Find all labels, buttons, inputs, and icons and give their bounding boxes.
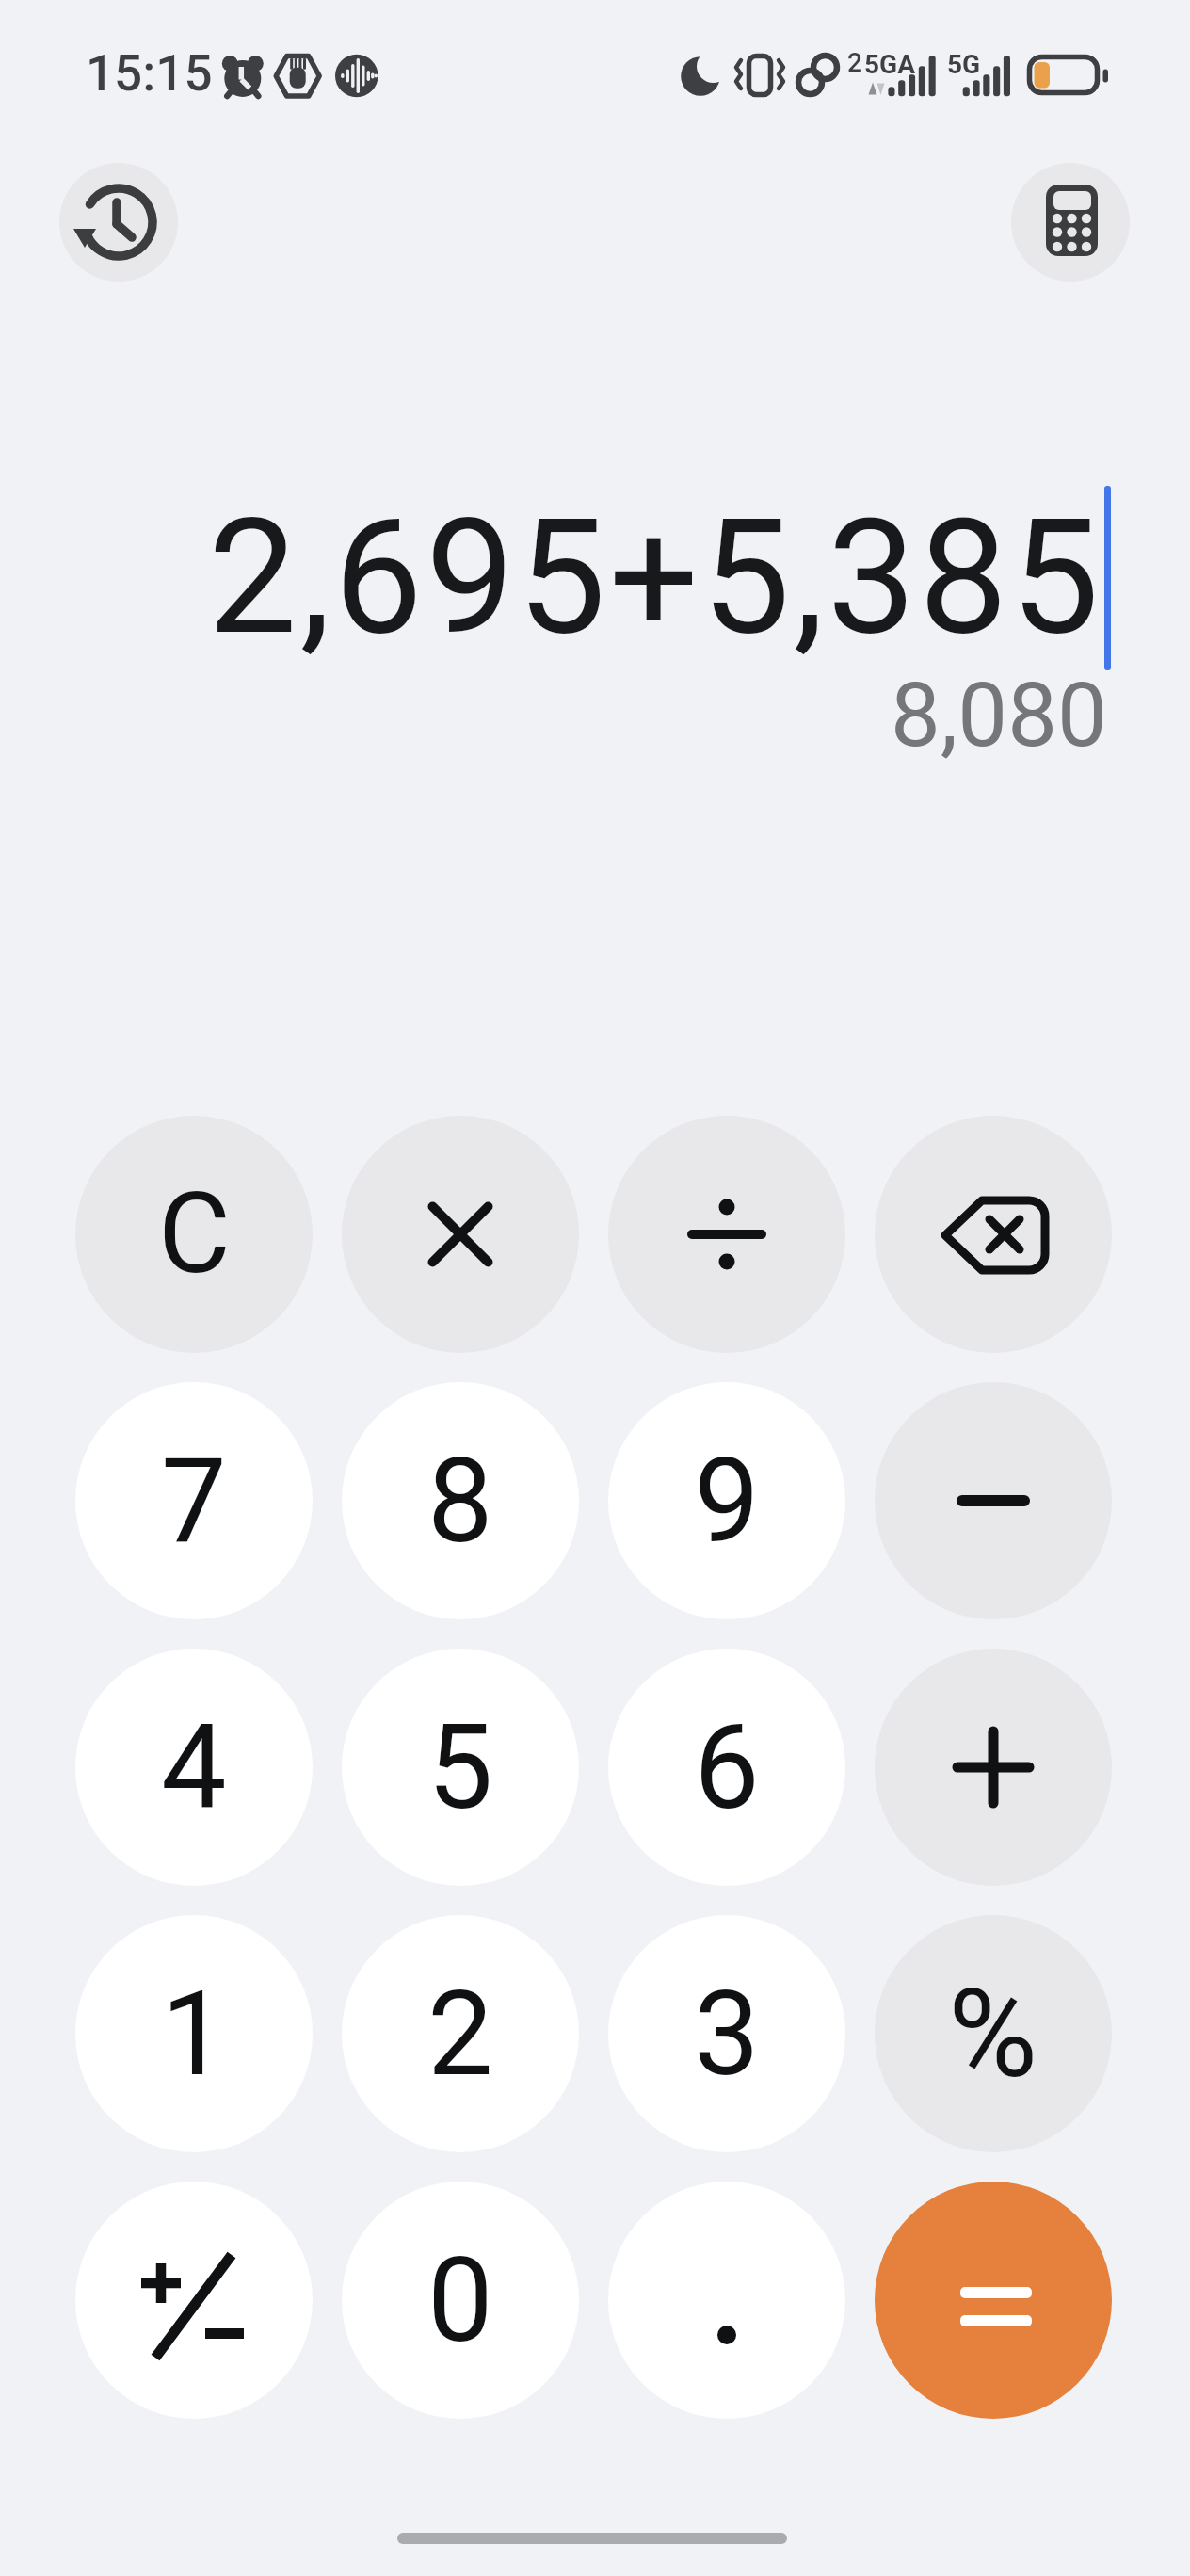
button[interactable]: % bbox=[875, 1915, 1112, 2152]
button[interactable] bbox=[608, 1116, 845, 1353]
staticText: 2 bbox=[427, 1966, 493, 2102]
staticText: 0 bbox=[427, 2232, 493, 2369]
button[interactable]: 8 bbox=[342, 1382, 579, 1619]
button[interactable]: 4 bbox=[75, 1649, 313, 1886]
staticText: 1 bbox=[161, 1966, 227, 2102]
staticText: 7 bbox=[161, 1433, 227, 1570]
button[interactable]: 9 bbox=[608, 1382, 845, 1619]
button[interactable]: C bbox=[75, 1116, 313, 1353]
staticText: 2 bbox=[847, 47, 862, 78]
staticText: 9 bbox=[694, 1433, 760, 1570]
button[interactable] bbox=[875, 2182, 1112, 2419]
button[interactable]: 7 bbox=[75, 1382, 313, 1619]
staticText: 6 bbox=[694, 1699, 760, 1836]
staticText: 5GA bbox=[864, 49, 915, 80]
staticText: 4 bbox=[161, 1699, 227, 1836]
staticText: 5 bbox=[427, 1699, 493, 1836]
staticText: 5G bbox=[947, 49, 981, 80]
button[interactable] bbox=[342, 1116, 579, 1353]
staticText: 3 bbox=[694, 1966, 760, 2102]
button[interactable]: 5 bbox=[342, 1649, 579, 1886]
button[interactable] bbox=[75, 2182, 313, 2419]
button[interactable] bbox=[875, 1649, 1112, 1886]
button[interactable] bbox=[875, 1116, 1112, 1353]
staticText: 8,080 bbox=[891, 664, 1107, 767]
button[interactable] bbox=[608, 2182, 845, 2419]
button[interactable]: 2 bbox=[342, 1915, 579, 2152]
staticText: % bbox=[948, 1962, 1038, 2105]
button[interactable]: 1 bbox=[75, 1915, 313, 2152]
staticText: 2,695+5,385 bbox=[208, 485, 1102, 670]
button[interactable] bbox=[875, 1382, 1112, 1619]
button[interactable] bbox=[59, 163, 178, 282]
staticText: C bbox=[158, 1169, 231, 1299]
staticText: 8 bbox=[427, 1433, 493, 1570]
button[interactable]: 0 bbox=[342, 2182, 579, 2419]
staticText: 15:15 bbox=[86, 44, 213, 103]
button[interactable] bbox=[1011, 163, 1130, 282]
button[interactable]: 6 bbox=[608, 1649, 845, 1886]
button[interactable]: 3 bbox=[608, 1915, 845, 2152]
